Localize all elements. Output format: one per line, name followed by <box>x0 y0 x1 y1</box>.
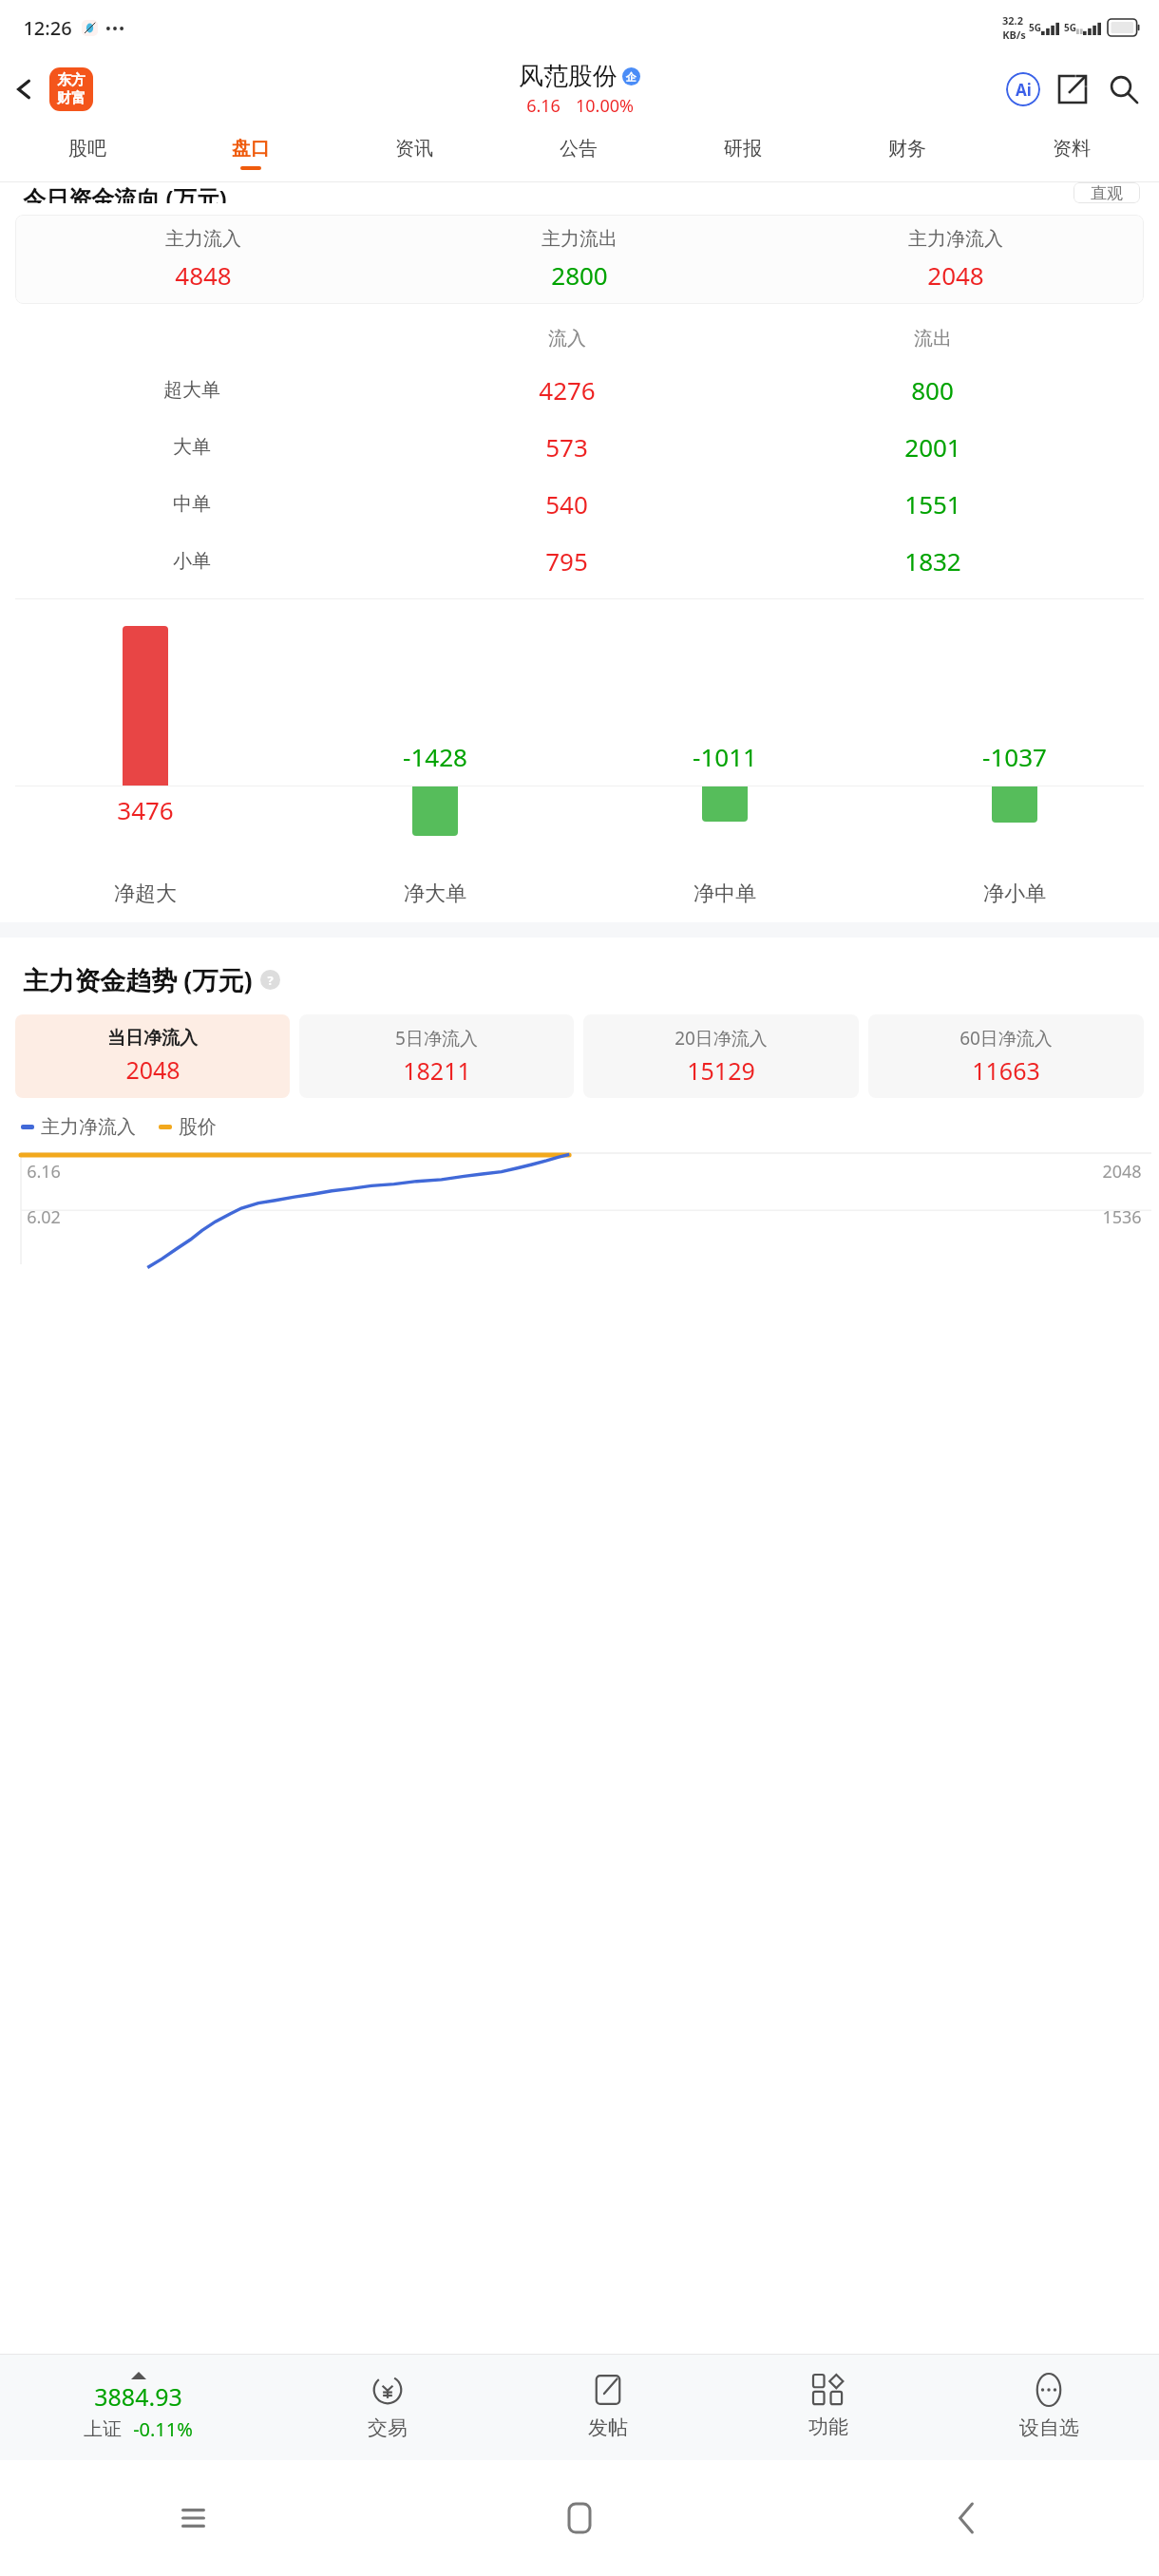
staticText: 超大单 <box>163 378 220 402</box>
staticText: 18211 <box>403 1054 471 1087</box>
button[interactable]: 超大单 <box>0 361 1159 418</box>
staticText: 2800 <box>551 258 608 292</box>
staticText: 1832 <box>904 544 961 578</box>
button[interactable]: 当日净流入 <box>15 1014 290 1098</box>
staticText: 800 <box>911 373 954 407</box>
staticText: 3884.93 <box>94 2380 182 2413</box>
staticText: 5G <box>1029 21 1041 34</box>
staticText: 32.2 <box>1002 13 1023 28</box>
button[interactable]: 设自选 <box>939 2354 1159 2460</box>
staticText: 540 <box>545 487 588 521</box>
staticText: 主力净流入 <box>41 1115 136 1139</box>
button[interactable]: East Money <box>49 67 93 111</box>
staticText: KB/s <box>1002 28 1026 42</box>
button[interactable]: 股吧 <box>6 123 169 182</box>
button[interactable]: 主力净流入 <box>768 227 1144 292</box>
button[interactable]: 功能 <box>718 2354 939 2460</box>
button[interactable]: 交易 <box>276 2354 498 2460</box>
staticText: 发帖 <box>588 2415 628 2440</box>
staticText: 财务 <box>888 137 926 161</box>
staticText: 6.16 <box>526 94 560 118</box>
button[interactable]: 主力流出 <box>391 227 768 292</box>
staticText: 当日净流入 <box>107 1027 198 1050</box>
staticText: 今日资金流向 (万元) <box>23 182 227 203</box>
staticText: 主力流入 <box>165 227 241 251</box>
button[interactable]: Help <box>260 970 280 990</box>
button[interactable]: 5日净流入 <box>299 1014 574 1098</box>
staticText: 直观 <box>1091 183 1123 203</box>
button[interactable]: 3476 <box>0 616 290 844</box>
staticText: 60日净流入 <box>959 1026 1053 1051</box>
button[interactable]: 财务 <box>825 123 989 182</box>
button[interactable]: 研报 <box>660 123 825 182</box>
button[interactable]: Back <box>0 65 49 114</box>
button[interactable]: Search <box>1098 64 1149 115</box>
staticText: 11663 <box>972 1054 1040 1087</box>
staticText: 2001 <box>904 430 961 464</box>
staticText: 795 <box>545 544 588 578</box>
button[interactable]: 资料 <box>989 123 1153 182</box>
button[interactable]: Home <box>386 2460 772 2576</box>
staticText: 流出 <box>914 327 952 350</box>
staticText: 功能 <box>808 2415 848 2439</box>
staticText: 2048 <box>125 1053 180 1086</box>
staticText: 流入 <box>548 327 586 350</box>
staticText: 小单 <box>173 549 211 573</box>
staticText: 5G <box>1064 21 1076 34</box>
button[interactable]: Share <box>1047 64 1098 115</box>
button[interactable]: 资讯 <box>332 123 496 182</box>
button[interactable]: 20日净流入 <box>583 1014 859 1098</box>
button[interactable]: 发帖 <box>498 2354 718 2460</box>
staticText: 主力流出 <box>541 227 617 251</box>
button[interactable]: 小单 <box>0 532 1159 589</box>
staticText: 企 <box>626 70 636 84</box>
button[interactable]: 3884.93 <box>0 2354 276 2460</box>
button[interactable]: 中单 <box>0 475 1159 532</box>
staticText: 主力资金趋势 (万元) <box>23 962 253 997</box>
staticText: 公告 <box>560 137 598 161</box>
staticText: 盘口 <box>232 137 270 161</box>
button[interactable]: -1037 <box>869 616 1159 844</box>
staticText: -1037 <box>982 740 1047 773</box>
staticText: 资讯 <box>395 137 433 161</box>
staticText: 3476 <box>117 793 174 826</box>
staticText: 2048 <box>1102 1160 1142 1184</box>
staticText: 资料 <box>1053 137 1091 161</box>
staticText: 4848 <box>175 258 232 292</box>
staticText: 大单 <box>173 435 211 459</box>
staticText: 交易 <box>368 2415 408 2440</box>
staticText: -0.11% <box>133 2416 193 2442</box>
staticText: 1536 <box>1102 1205 1142 1229</box>
staticText: 股价 <box>179 1115 217 1139</box>
staticText: 2048 <box>927 258 984 292</box>
button[interactable]: 盘口 <box>169 123 332 182</box>
staticText: Ai <box>1016 79 1032 101</box>
staticText: 财富 <box>57 89 85 107</box>
button[interactable]: -1428 <box>290 616 579 844</box>
button[interactable]: 60日净流入 <box>868 1014 1144 1098</box>
staticText: 573 <box>545 430 588 464</box>
button[interactable]: Recents <box>0 2460 386 2576</box>
button[interactable]: -1011 <box>579 616 869 844</box>
staticText: 东方 <box>57 71 85 89</box>
staticText: -1428 <box>403 740 467 773</box>
staticText: 上证 <box>84 2417 122 2441</box>
button[interactable]: 公告 <box>496 123 660 182</box>
button[interactable]: 主力流入 <box>15 227 391 292</box>
staticText: 6.16 <box>27 1160 61 1184</box>
staticText: 10.00% <box>576 94 634 118</box>
staticText: 净超大 <box>114 881 177 907</box>
staticText: 股吧 <box>68 137 106 161</box>
button[interactable]: 大单 <box>0 418 1159 475</box>
button[interactable]: AI assistant <box>999 66 1047 113</box>
staticText: 净中单 <box>693 881 756 907</box>
staticText: 主力净流入 <box>908 227 1003 251</box>
button[interactable]: 直观 <box>1073 182 1140 203</box>
staticText: 净大单 <box>404 881 466 907</box>
button[interactable]: Back <box>772 2460 1159 2576</box>
staticText: 15129 <box>687 1054 755 1087</box>
staticText: 5日净流入 <box>395 1026 478 1051</box>
staticText: 12:26 <box>23 15 72 41</box>
staticText: 风范股份 <box>519 61 617 92</box>
staticText: ? <box>267 972 274 989</box>
